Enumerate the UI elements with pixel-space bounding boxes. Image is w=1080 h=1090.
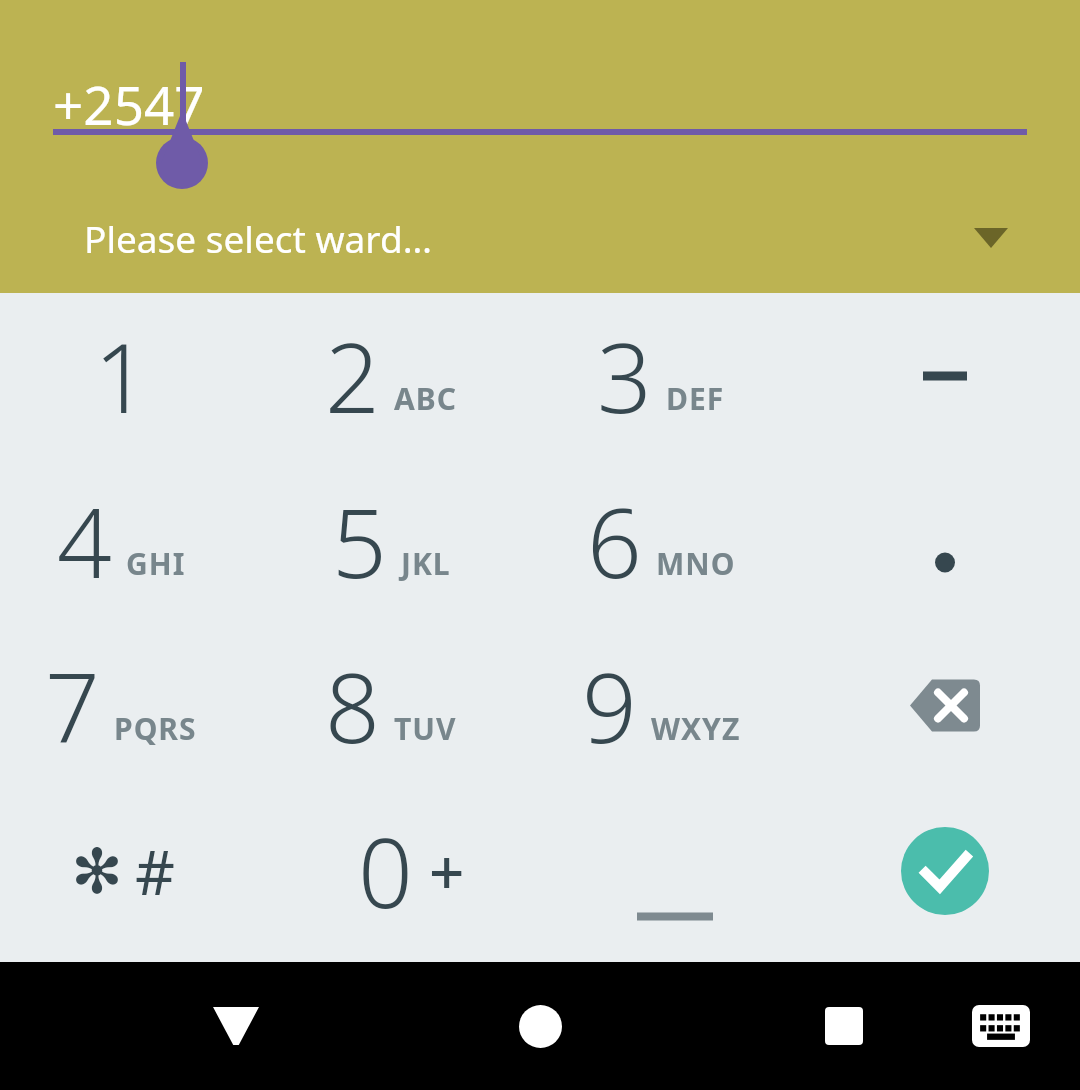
button[interactable]: Back xyxy=(176,966,296,1086)
button[interactable]: Dash xyxy=(810,293,1080,458)
staticText: GHI xyxy=(126,543,186,584)
button[interactable]: 0 xyxy=(270,788,540,953)
button[interactable]: Recent apps xyxy=(784,966,904,1086)
button[interactable]: +2547 xyxy=(0,0,1080,160)
staticText: TUV xyxy=(394,708,457,749)
button[interactable]: 9 xyxy=(540,623,810,788)
staticText: 8 xyxy=(325,640,380,771)
button[interactable]: 5 xyxy=(270,458,540,623)
button[interactable]: 4 xyxy=(0,458,270,623)
button[interactable]: 8 xyxy=(270,623,540,788)
button[interactable]: Period xyxy=(810,458,1080,623)
button[interactable]: Home xyxy=(480,966,600,1086)
button[interactable]: Confirm xyxy=(901,827,989,915)
staticText: WXYZ xyxy=(651,708,741,749)
staticText: 9 xyxy=(582,640,637,771)
staticText: ✻ xyxy=(71,835,123,907)
button[interactable]: 6 xyxy=(540,458,810,623)
button[interactable]: 7 xyxy=(0,623,270,788)
staticText: DEF xyxy=(666,378,725,419)
staticText: 6 xyxy=(587,475,642,606)
button[interactable]: Backspace xyxy=(810,623,1080,788)
button[interactable]: ✻ xyxy=(0,788,270,953)
staticText: +2547 xyxy=(53,68,205,140)
button[interactable]: Switch keyboard xyxy=(941,966,1061,1086)
staticText: ABC xyxy=(394,378,457,419)
button[interactable]: Underscore xyxy=(540,788,810,953)
staticText: JKL xyxy=(401,543,451,584)
staticText: 4 xyxy=(57,475,112,606)
staticText: 2 xyxy=(325,310,380,441)
staticText: 5 xyxy=(332,475,387,606)
button[interactable]: 3 xyxy=(540,293,810,458)
staticText: # xyxy=(135,829,176,913)
staticText: 0 xyxy=(358,805,413,936)
staticText: + xyxy=(429,829,465,913)
staticText: Please select ward… xyxy=(84,213,432,263)
button[interactable]: 2 xyxy=(270,293,540,458)
staticText: PQRS xyxy=(114,708,197,749)
staticText: 1 xyxy=(94,310,149,441)
staticText: MNO xyxy=(656,543,736,584)
staticText: 3 xyxy=(597,310,652,441)
staticText: 7 xyxy=(45,640,100,771)
button[interactable]: 1 xyxy=(0,293,270,458)
button[interactable]: Please select ward… xyxy=(0,183,1080,293)
